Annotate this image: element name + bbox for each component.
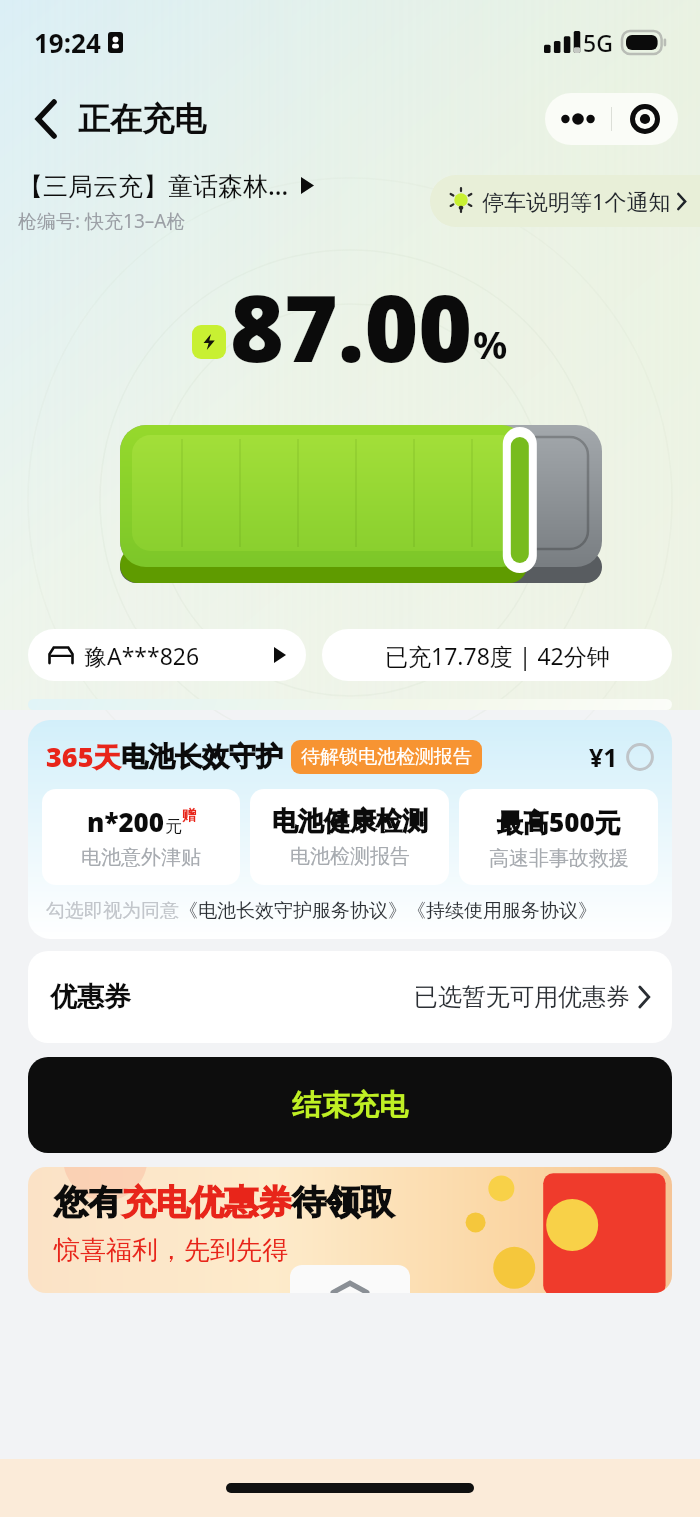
staticText: 豫A***826	[84, 640, 200, 671]
staticText: 电池长效守护	[121, 740, 283, 774]
button[interactable]: 结束充电	[28, 1057, 672, 1153]
button[interactable]: Select plan	[626, 743, 654, 771]
staticText: 元	[165, 816, 182, 837]
staticText: n*200	[87, 804, 165, 839]
staticText: 赠	[182, 807, 196, 825]
staticText: 结束充电	[292, 1087, 408, 1124]
staticText: 停车说明等1个通知	[482, 186, 671, 216]
button[interactable]: 您有	[28, 1167, 672, 1293]
button[interactable]: Collapse banner	[290, 1265, 410, 1293]
staticText: 充电优惠券	[122, 1181, 292, 1224]
staticText: 19:24	[34, 25, 101, 60]
staticText: 最高500元	[497, 804, 621, 840]
button[interactable]: 已充17.78度 | 42分钟	[322, 629, 672, 681]
button[interactable]: 最高500元	[459, 789, 658, 885]
staticText: 枪编号: 快充13–A枪	[18, 208, 186, 234]
staticText: ¥1	[589, 740, 618, 774]
staticText: 365天	[46, 738, 121, 775]
staticText: 待解锁电池检测报告	[301, 745, 472, 769]
button[interactable]: 【三局云充】童话森林…	[18, 168, 314, 234]
button[interactable]: n*200	[42, 789, 240, 885]
staticText: 电池健康检测	[272, 805, 428, 838]
staticText: 5G	[583, 27, 613, 58]
button[interactable]: Back	[24, 96, 70, 142]
staticText: 您有	[54, 1181, 122, 1224]
staticText: 惊喜福利，先到先得	[54, 1234, 288, 1267]
button[interactable]: 电池健康检测	[250, 789, 449, 885]
staticText: 勾选即视为同意	[46, 899, 179, 923]
button[interactable]: 20.78	[28, 699, 672, 710]
staticText: %	[473, 318, 508, 370]
button[interactable]: 停车说明等1个通知	[430, 175, 700, 227]
staticText: 高速非事故救援	[489, 846, 629, 871]
staticText: 待领取	[292, 1181, 394, 1224]
button[interactable]: Locate	[612, 93, 678, 145]
button[interactable]: 豫A***826	[28, 629, 306, 681]
staticText: 《电池长效守护服务协议》《持续使用服务协议》	[179, 899, 597, 923]
staticText: 正在充电	[78, 99, 206, 139]
staticText: 87.00	[230, 264, 473, 389]
button[interactable]: 365天	[28, 720, 672, 939]
staticText: 已充17.78度 | 42分钟	[385, 640, 610, 671]
staticText: 电池检测报告	[290, 844, 410, 869]
staticText: 【三局云充】童话森林…	[18, 168, 289, 202]
staticText: 电池意外津贴	[81, 845, 201, 870]
button[interactable]: 优惠券	[28, 951, 672, 1043]
staticText: 已选暂无可用优惠券	[414, 982, 630, 1012]
button[interactable]: More options	[545, 93, 611, 145]
staticText: 优惠券	[50, 980, 131, 1014]
